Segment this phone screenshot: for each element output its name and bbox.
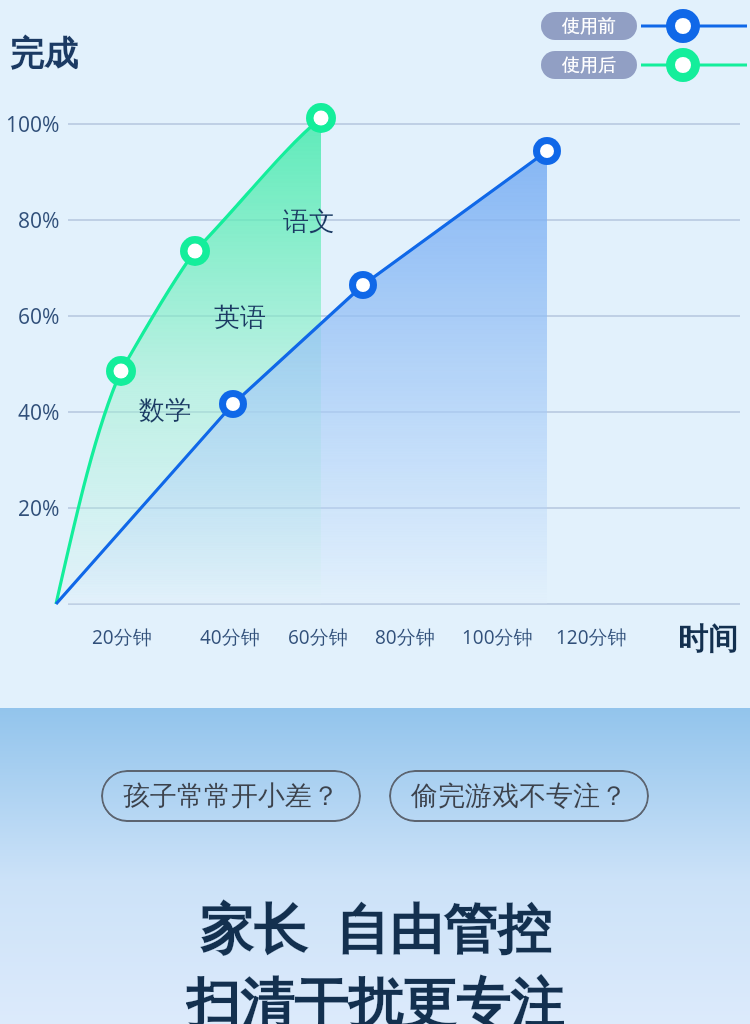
staticText: 60%: [18, 302, 60, 331]
button[interactable]: 孩子常常开小差？: [101, 770, 361, 822]
staticText: 数学: [139, 394, 191, 427]
staticText: 偷完游戏不专注？: [411, 779, 627, 813]
staticText: 100%: [6, 110, 60, 139]
staticText: 扫清干扰更专注: [186, 970, 564, 1024]
staticText: 60分钟: [288, 624, 348, 650]
staticText: 80分钟: [375, 624, 435, 650]
button[interactable]: 使用前: [541, 12, 750, 40]
staticText: 100分钟: [462, 624, 533, 650]
button[interactable]: 使用后: [541, 51, 750, 79]
staticText: 孩子常常开小差？: [123, 779, 339, 813]
staticText: 40%: [18, 398, 60, 427]
staticText: 语文: [283, 205, 335, 238]
staticText: 使用前: [562, 15, 616, 38]
staticText: 20分钟: [92, 624, 152, 650]
staticText: 英语: [214, 301, 266, 334]
staticText: 40分钟: [200, 624, 260, 650]
staticText: 20%: [18, 494, 60, 523]
staticText: 使用后: [562, 54, 616, 77]
staticText: 80%: [18, 206, 60, 235]
staticText: 家长 自由管控: [199, 890, 552, 964]
staticText: 时间: [678, 620, 738, 658]
staticText: 120分钟: [556, 624, 627, 650]
button[interactable]: 偷完游戏不专注？: [389, 770, 649, 822]
staticText: 完成: [10, 32, 78, 75]
